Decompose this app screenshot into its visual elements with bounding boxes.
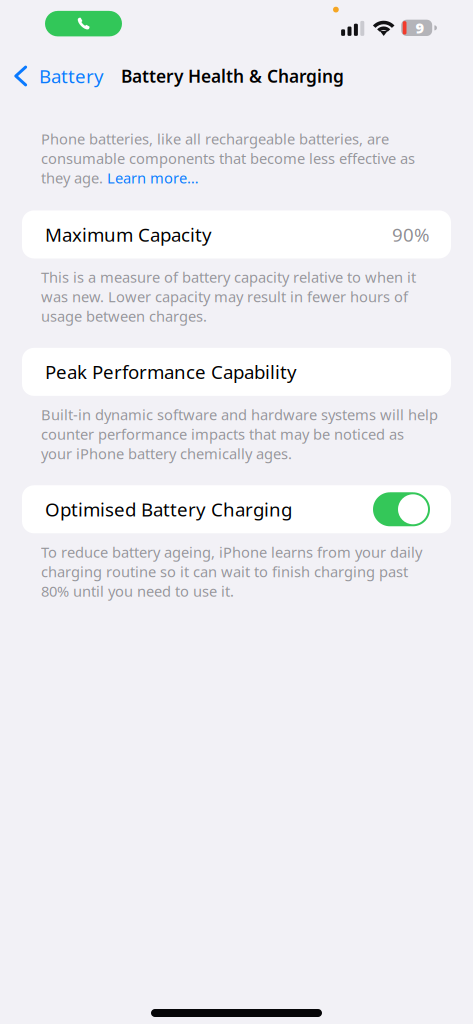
staticText: Battery Health & Charging <box>121 64 344 87</box>
staticText: Built-in dynamic software and hardware s… <box>41 405 438 463</box>
staticText: Optimised Battery Charging <box>45 497 292 522</box>
staticText: Phone batteries, like all rechargeable b… <box>41 129 415 187</box>
button[interactable]: Peak Performance Capability <box>0 348 473 396</box>
staticText: Maximum Capacity <box>45 222 212 247</box>
button[interactable]: Maximum Capacity <box>0 210 473 258</box>
button[interactable]: Optimised Battery Charging, on <box>373 492 430 526</box>
staticText: Peak Performance Capability <box>45 359 297 384</box>
staticText: 9 <box>415 18 424 38</box>
staticText: 90% <box>392 222 430 247</box>
staticText: Battery <box>39 64 104 88</box>
staticText: To reduce battery ageing, iPhone learns … <box>41 542 422 601</box>
button[interactable]: Learn more <box>68 164 158 183</box>
staticText: This is a measure of battery capacity re… <box>41 267 416 326</box>
button[interactable]: Battery <box>0 54 113 98</box>
